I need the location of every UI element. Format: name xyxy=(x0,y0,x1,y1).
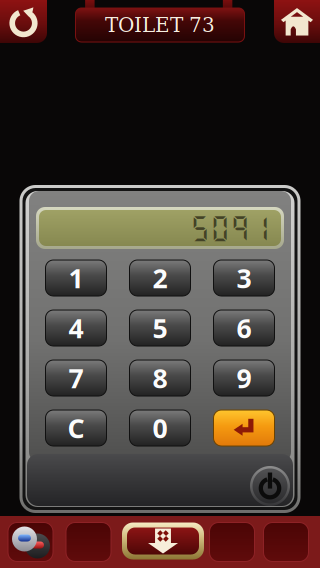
staticText: 3 xyxy=(236,260,251,296)
button[interactable]: 5 xyxy=(129,310,190,346)
button[interactable]: 1 xyxy=(45,260,106,296)
staticText: 7 xyxy=(68,360,83,396)
button[interactable]: C xyxy=(45,410,106,446)
button[interactable]: 9 xyxy=(213,360,274,396)
staticText: C xyxy=(67,410,84,446)
button[interactable]: 4 xyxy=(45,310,106,346)
button[interactable]: Power xyxy=(250,466,290,506)
button[interactable]: Empty inventory slot xyxy=(263,522,308,561)
button[interactable]: 0 xyxy=(129,410,190,446)
button[interactable]: 7 xyxy=(45,360,106,396)
button[interactable]: 2 xyxy=(129,260,190,296)
button[interactable]: Home xyxy=(274,0,320,43)
staticText: 8 xyxy=(152,360,167,396)
button[interactable]: Empty inventory slot xyxy=(209,522,254,561)
staticText: 9 xyxy=(236,360,251,396)
staticText: 4 xyxy=(68,310,83,346)
staticText: 1 xyxy=(68,260,83,296)
staticText: 5 xyxy=(152,310,167,346)
button[interactable]: Restart level xyxy=(0,0,47,43)
staticText: 2 xyxy=(152,260,167,296)
button[interactable]: Enter xyxy=(213,410,274,446)
staticText: TOILET 73 xyxy=(105,13,215,37)
staticText: 5091 xyxy=(190,212,270,244)
button[interactable]: 3 xyxy=(213,260,274,296)
button[interactable]: Empty inventory slot xyxy=(66,522,111,561)
button[interactable]: Drop item xyxy=(122,522,204,559)
button[interactable]: 6 xyxy=(213,310,274,346)
button[interactable]: Masks xyxy=(8,522,53,561)
staticText: 6 xyxy=(236,310,251,346)
staticText: 0 xyxy=(152,410,167,446)
button[interactable]: 8 xyxy=(129,360,190,396)
